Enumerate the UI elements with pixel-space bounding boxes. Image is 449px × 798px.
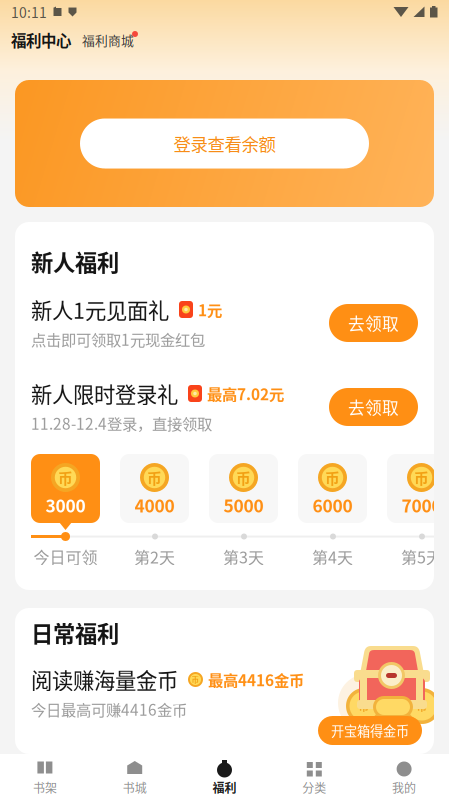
button[interactable]: 币 [209,454,278,565]
staticText: 币 [414,469,429,486]
staticText: 币 [58,469,73,486]
staticText: 福利 [212,781,236,794]
staticText: 第5天 [401,547,442,566]
staticText: 币 [358,700,369,712]
staticText: 3000 [45,495,85,515]
button[interactable]: 币 [298,454,367,565]
button[interactable]: 分类 [269,750,359,798]
staticText: 分类 [302,781,326,794]
staticText: 日常福利 [31,620,119,645]
staticText: 币 [416,700,427,712]
staticText: 最高7.02元 [207,385,284,402]
staticText: 新人1元见面礼 [31,297,169,322]
staticText: 今日最高可赚4416金币 [31,700,187,718]
staticText: 福利中心 [11,31,71,49]
button[interactable]: 币 [387,454,449,565]
staticText: 6000 [312,495,352,515]
staticText: 5000 [223,495,263,515]
button[interactable]: 去领取 [329,304,418,342]
staticText: 7000 [401,495,441,515]
staticText: 1元 [198,301,222,318]
staticText: 10:11 [11,4,47,20]
staticText: 第3天 [223,547,264,566]
staticText: 新人福利 [31,249,119,274]
staticText: 开宝箱得金币 [331,723,409,738]
staticText: 点击即可领取1元现金红包 [31,330,205,348]
button[interactable]: 书架 [0,750,90,798]
staticText: 第4天 [312,547,353,566]
button[interactable]: 福利中心 [11,30,71,50]
staticText: 今日可领 [33,547,97,566]
button[interactable]: 开宝箱得金币 [318,716,422,745]
button[interactable]: 币 [120,454,189,565]
button[interactable]: 书城 [90,750,180,798]
staticText: 阅读赚海量金币 [31,667,178,692]
staticText: 福利商城 [82,33,134,47]
button[interactable]: 去领取 [329,388,418,426]
staticText: 我的 [392,781,416,794]
staticText: 第2天 [134,547,175,566]
staticText: 4000 [134,495,174,515]
staticText: 币 [325,469,340,486]
staticText: 去领取 [348,398,399,416]
staticText: 币 [191,675,199,684]
button[interactable]: 登录查看余额 [80,118,369,168]
staticText: 书城 [123,781,147,794]
staticText: 书架 [33,781,57,794]
button[interactable]: 币 [31,454,100,565]
button[interactable]: 福利商城 [82,30,134,50]
button[interactable]: 我的 [359,750,449,798]
staticText: 去领取 [348,314,399,332]
staticText: 币 [147,469,162,486]
staticText: 最高4416金币 [208,671,304,688]
staticText: 登录查看余额 [173,134,275,153]
staticText: 币 [236,469,251,486]
staticText: 11.28-12.4登录，直接领取 [31,414,212,432]
staticText: 新人限时登录礼 [31,381,178,406]
button[interactable]: 福利 [180,750,269,798]
